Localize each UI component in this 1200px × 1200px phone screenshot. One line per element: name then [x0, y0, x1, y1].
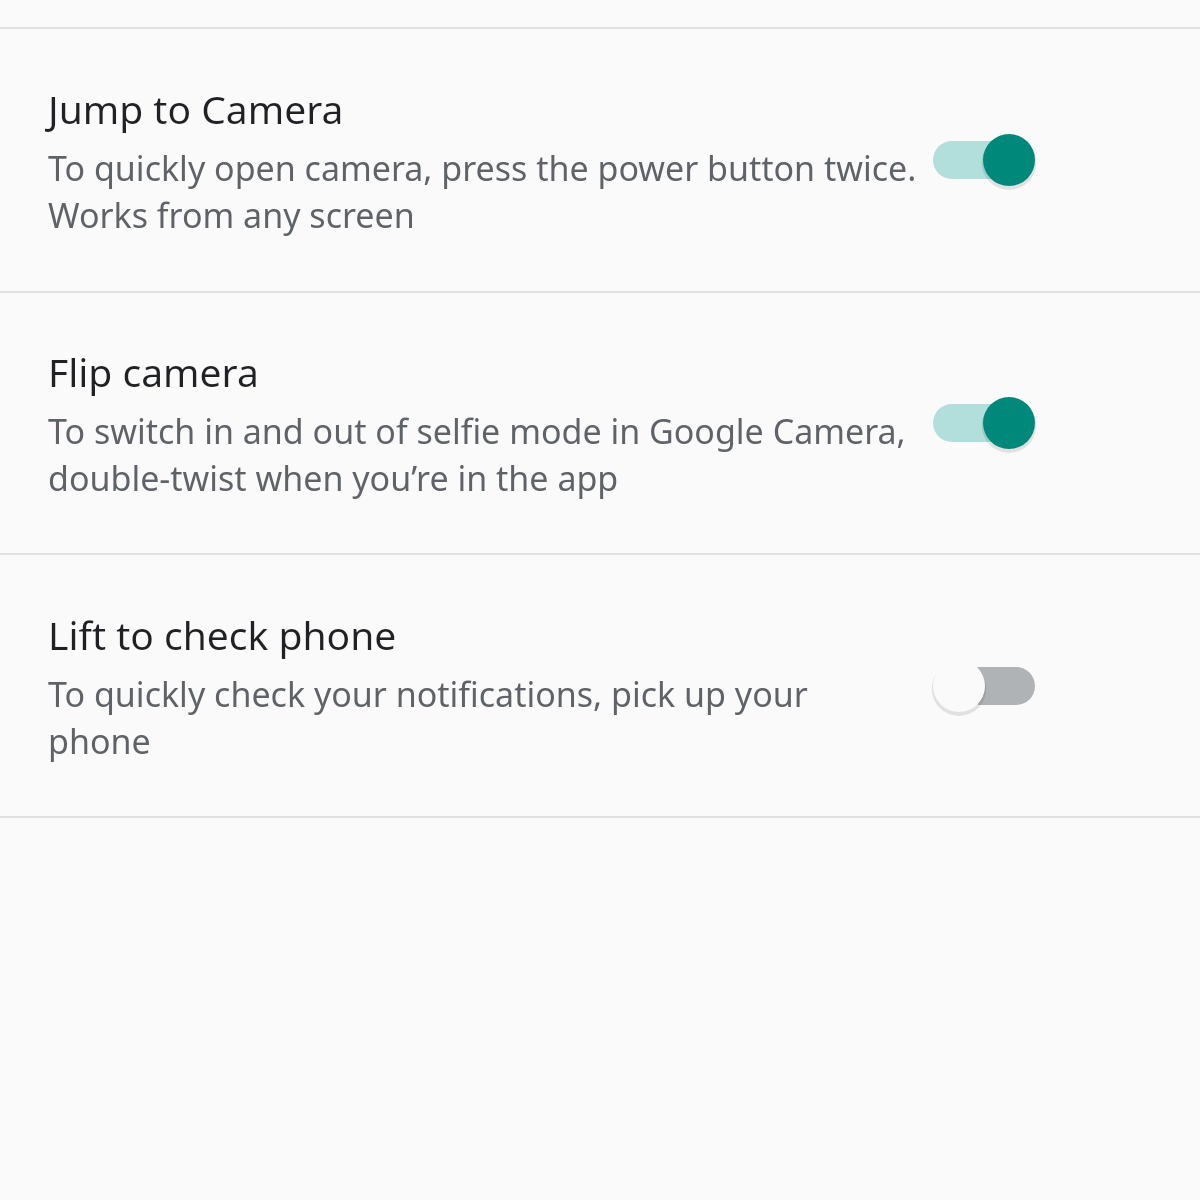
- button[interactable]: Jump to Camera: [0, 29, 1200, 291]
- button[interactable]: Jump to Camera, on: [919, 105, 1049, 215]
- staticText: To switch in and out of selfie mode in G…: [48, 408, 918, 501]
- staticText: Flip camera: [48, 345, 259, 398]
- staticText: To quickly open camera, press the power …: [48, 145, 918, 238]
- button[interactable]: Flip camera: [0, 293, 1200, 553]
- button[interactable]: Lift to check phone, off: [919, 631, 1049, 741]
- button[interactable]: Flip camera, on: [919, 368, 1049, 478]
- button[interactable]: Lift to check phone: [0, 555, 1200, 816]
- staticText: Lift to check phone: [48, 608, 397, 661]
- staticText: Jump to Camera: [48, 82, 344, 135]
- staticText: To quickly check your notifications, pic…: [48, 671, 918, 764]
